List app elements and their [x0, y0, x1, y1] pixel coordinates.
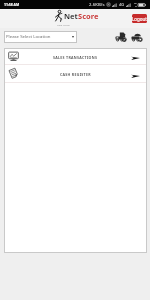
- button[interactable]: SALES TRANSACTIONS: [4, 48, 147, 64]
- staticText: Please Select Location: [6, 33, 51, 39]
- staticText: Net: [64, 11, 78, 21]
- button[interactable]: CASH REGISTER: [4, 65, 147, 82]
- staticText: SALES TRANSACTIONS: [53, 55, 98, 60]
- button[interactable]: Vehicles: [131, 32, 142, 42]
- staticText: Take Action: [57, 23, 70, 26]
- staticText: Logout: [132, 16, 147, 22]
- staticText: CASH REGISTER: [60, 72, 91, 77]
- button[interactable]: Delivery orders: [115, 32, 126, 42]
- staticText: %: [135, 5, 137, 8]
- staticText: 4G: [119, 2, 125, 7]
- staticText: 76: [134, 2, 137, 5]
- staticText: Score: [78, 11, 99, 21]
- staticText: 2.6KB/s: [89, 2, 105, 8]
- button[interactable]: Logout: [132, 14, 147, 23]
- staticText: 11:58 AM: [4, 2, 20, 7]
- button[interactable]: Please Select Location: [4, 31, 77, 43]
